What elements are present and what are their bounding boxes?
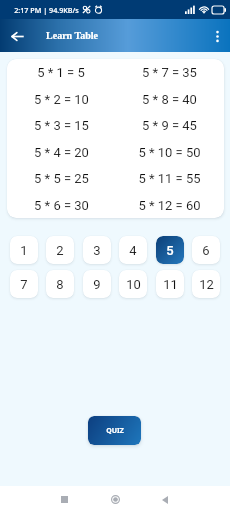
button[interactable]: 6 xyxy=(192,236,220,264)
button[interactable]: 12 xyxy=(192,270,220,298)
staticText: 5 * 11 = 55 xyxy=(138,171,201,186)
button[interactable]: 9 xyxy=(83,270,111,298)
button[interactable]: Recent apps xyxy=(53,488,76,511)
staticText: 5 * 5 = 25 xyxy=(34,171,89,186)
staticText: 5 * 8 = 40 xyxy=(142,92,197,107)
staticText: 10 xyxy=(126,277,141,292)
button[interactable]: 11 xyxy=(156,270,184,298)
button[interactable]: 8 xyxy=(46,270,74,298)
staticText: 5 * 4 = 20 xyxy=(34,145,89,160)
button[interactable]: Back xyxy=(6,25,28,47)
button[interactable]: 7 xyxy=(10,270,38,298)
staticText: 5 * 12 = 60 xyxy=(138,198,201,213)
button[interactable]: 2 xyxy=(46,236,74,264)
staticText: 5 * 3 = 15 xyxy=(34,118,89,133)
button[interactable]: 4 xyxy=(119,236,147,264)
button[interactable]: Home xyxy=(104,488,127,511)
staticText: Learn Table xyxy=(46,30,98,41)
staticText: 5 * 6 = 30 xyxy=(34,198,89,213)
button[interactable]: 5 xyxy=(156,236,184,264)
staticText: 5 * 7 = 35 xyxy=(142,65,197,80)
staticText: 5 * 1 = 5 xyxy=(37,65,85,80)
button[interactable]: 3 xyxy=(83,236,111,264)
staticText: 5 * 10 = 50 xyxy=(138,145,201,160)
staticText: 2:17 PM | 94.9KB/s xyxy=(14,5,79,15)
staticText: 1 xyxy=(20,243,28,258)
staticText: 11 xyxy=(163,277,178,292)
staticText: 9 xyxy=(93,277,101,292)
staticText: 7 xyxy=(20,277,28,292)
button[interactable]: 1 xyxy=(10,236,38,264)
button[interactable]: More options xyxy=(206,25,228,47)
staticText: 6 xyxy=(202,243,210,258)
staticText: 4 xyxy=(129,243,137,258)
staticText: 5 * 2 = 10 xyxy=(34,92,89,107)
button[interactable]: 10 xyxy=(119,270,147,298)
staticText: 12 xyxy=(199,277,214,292)
staticText: 2 xyxy=(56,243,64,258)
button[interactable]: Back xyxy=(153,488,176,511)
staticText: 5 xyxy=(166,243,174,258)
staticText: 3 xyxy=(93,243,101,258)
staticText: 8 xyxy=(56,277,64,292)
staticText: 5 * 9 = 45 xyxy=(142,118,197,133)
button[interactable]: QUIZ xyxy=(88,416,141,445)
staticText: QUIZ xyxy=(106,426,124,436)
